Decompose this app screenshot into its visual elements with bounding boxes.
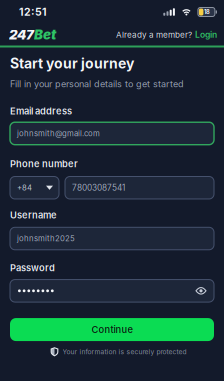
button[interactable]: Login — [195, 30, 217, 40]
staticText: Username — [10, 209, 57, 221]
staticText: Continue — [91, 324, 132, 335]
staticText: Phone number — [10, 158, 78, 169]
staticText: johnsmith@gmail.com — [17, 129, 100, 138]
staticText: +84 — [17, 183, 32, 192]
staticText: Login — [195, 30, 217, 40]
button[interactable]: Continue — [10, 318, 214, 341]
staticText: Your information is securely protected — [62, 348, 186, 356]
staticText: Password — [10, 262, 55, 274]
staticText: Bet — [34, 27, 56, 43]
staticText: 12:51 — [19, 6, 47, 18]
button[interactable]: Show password — [196, 287, 214, 295]
staticText: Email address — [10, 105, 72, 117]
staticText: 247 — [9, 27, 34, 43]
button[interactable]: Country code — [10, 176, 59, 199]
staticText: 78003087541 — [72, 183, 125, 193]
staticText: johnsmith2025 — [17, 234, 75, 243]
staticText: Fill in your personal details to get sta… — [10, 78, 184, 89]
staticText: 18 — [204, 8, 210, 15]
staticText: Already a member? — [116, 30, 192, 40]
staticText: Start your journey — [10, 55, 134, 72]
